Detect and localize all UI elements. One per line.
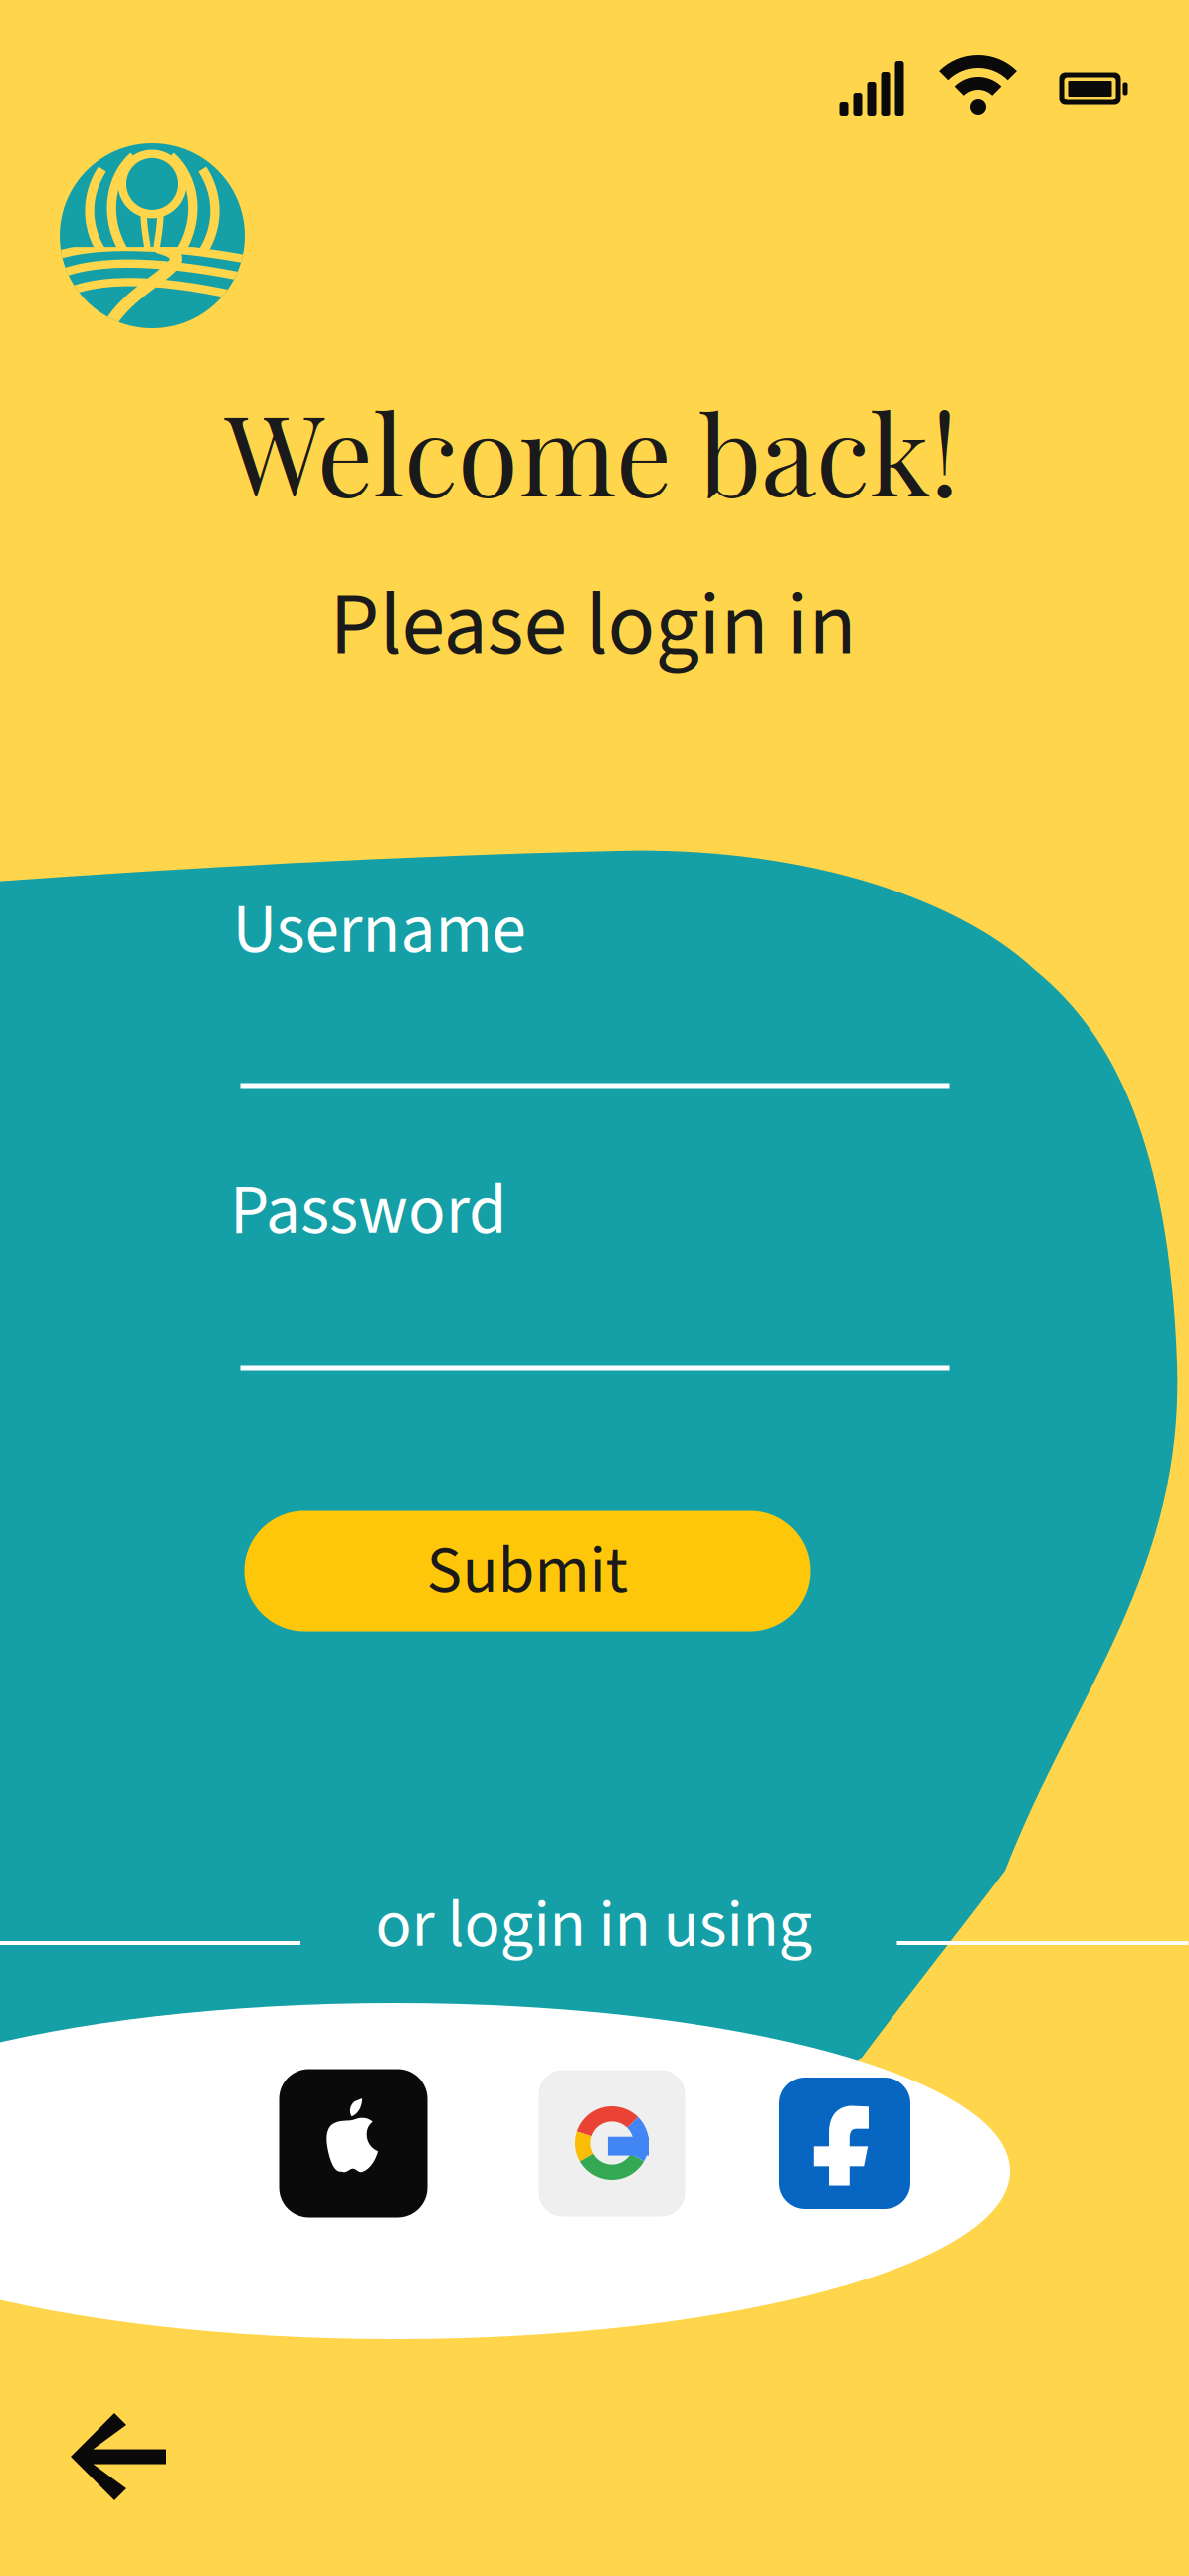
staticText: Submit <box>426 1524 628 1618</box>
staticText: Username <box>232 881 526 979</box>
button[interactable]: Sign in with Google <box>539 2070 685 2216</box>
staticText: or login in using <box>376 1878 812 1972</box>
button[interactable]: Back <box>71 2409 166 2504</box>
button[interactable]: Submit <box>244 1511 810 1631</box>
staticText: Please login in <box>330 563 856 688</box>
staticText: Password <box>230 1162 506 1260</box>
button[interactable]: Sign in with Facebook <box>779 2078 910 2209</box>
button[interactable]: Sign in with Apple <box>279 2069 427 2217</box>
staticText: Welcome back! <box>225 377 959 524</box>
